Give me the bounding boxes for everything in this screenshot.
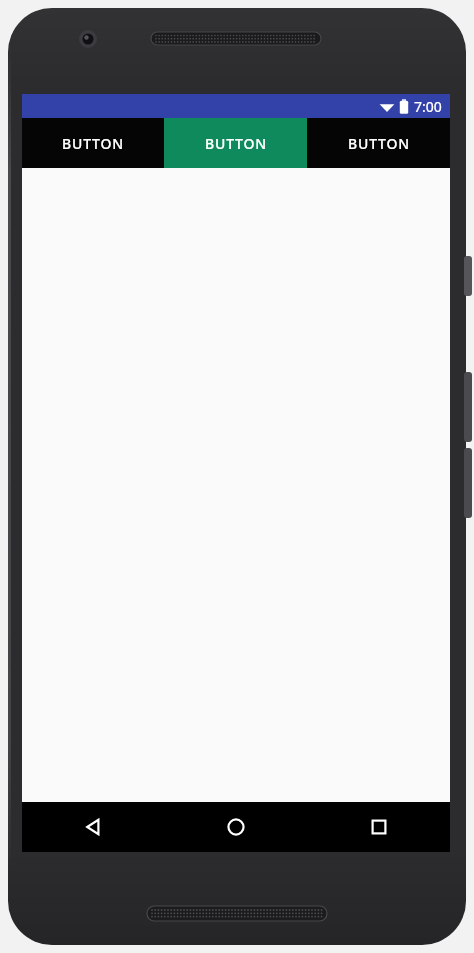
staticText: BUTTON [205, 134, 267, 153]
button[interactable]: BUTTON [22, 118, 164, 168]
button[interactable]: Recent apps [307, 802, 450, 852]
button[interactable]: BUTTON [164, 118, 307, 168]
button[interactable]: Home [164, 802, 307, 852]
staticText: BUTTON [348, 134, 410, 153]
button[interactable]: Back [22, 802, 164, 852]
button[interactable]: BUTTON [307, 118, 450, 168]
staticText: BUTTON [62, 134, 124, 153]
staticText: 7:00 [414, 97, 442, 116]
